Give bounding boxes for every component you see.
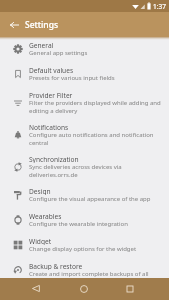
staticText: Presets for various input fields: [29, 74, 115, 82]
button[interactable]: Default values: [0, 62, 169, 87]
staticText: Notifications: [29, 123, 69, 131]
button[interactable]: Recent apps: [118, 278, 142, 300]
staticText: Settings: [25, 19, 59, 31]
staticText: Widget: [29, 237, 52, 245]
button[interactable]: Design: [0, 183, 169, 208]
staticText: Wearables: [29, 212, 62, 220]
staticText: Provider Filter: [29, 91, 73, 99]
button[interactable]: Backup & restore: [0, 258, 169, 278]
staticText: Default values: [29, 66, 74, 74]
staticText: Sync deliveries across devices via: [29, 163, 122, 171]
staticText: Configure auto notifications and notific…: [29, 131, 154, 139]
staticText: Configure the visual appearance of the a…: [29, 195, 151, 203]
staticText: Configure the wearable integration: [29, 220, 128, 228]
staticText: deliveries.orrs.de: [29, 171, 78, 179]
button[interactable]: Wearables: [0, 208, 169, 233]
button[interactable]: Back: [0, 12, 29, 37]
button[interactable]: Provider Filter: [0, 87, 169, 119]
staticText: Filter the providers displayed while add…: [29, 99, 161, 107]
staticText: Change display options for the widget: [29, 245, 137, 253]
button[interactable]: Back: [24, 278, 48, 300]
staticText: central: [29, 139, 49, 147]
staticText: General: [29, 41, 54, 49]
button[interactable]: Widget: [0, 233, 169, 258]
staticText: General app settings: [29, 49, 88, 57]
staticText: Create and import complete backups of al…: [29, 270, 149, 278]
button[interactable]: Home: [72, 278, 96, 300]
button[interactable]: Synchronization: [0, 151, 169, 183]
button[interactable]: General: [0, 37, 169, 62]
button[interactable]: Notifications: [0, 119, 169, 151]
staticText: Synchronization: [29, 155, 79, 163]
staticText: editing a delivery: [29, 107, 78, 115]
staticText: Backup & restore: [29, 262, 83, 270]
staticText: Design: [29, 187, 51, 195]
staticText: 1:37: [153, 2, 166, 11]
